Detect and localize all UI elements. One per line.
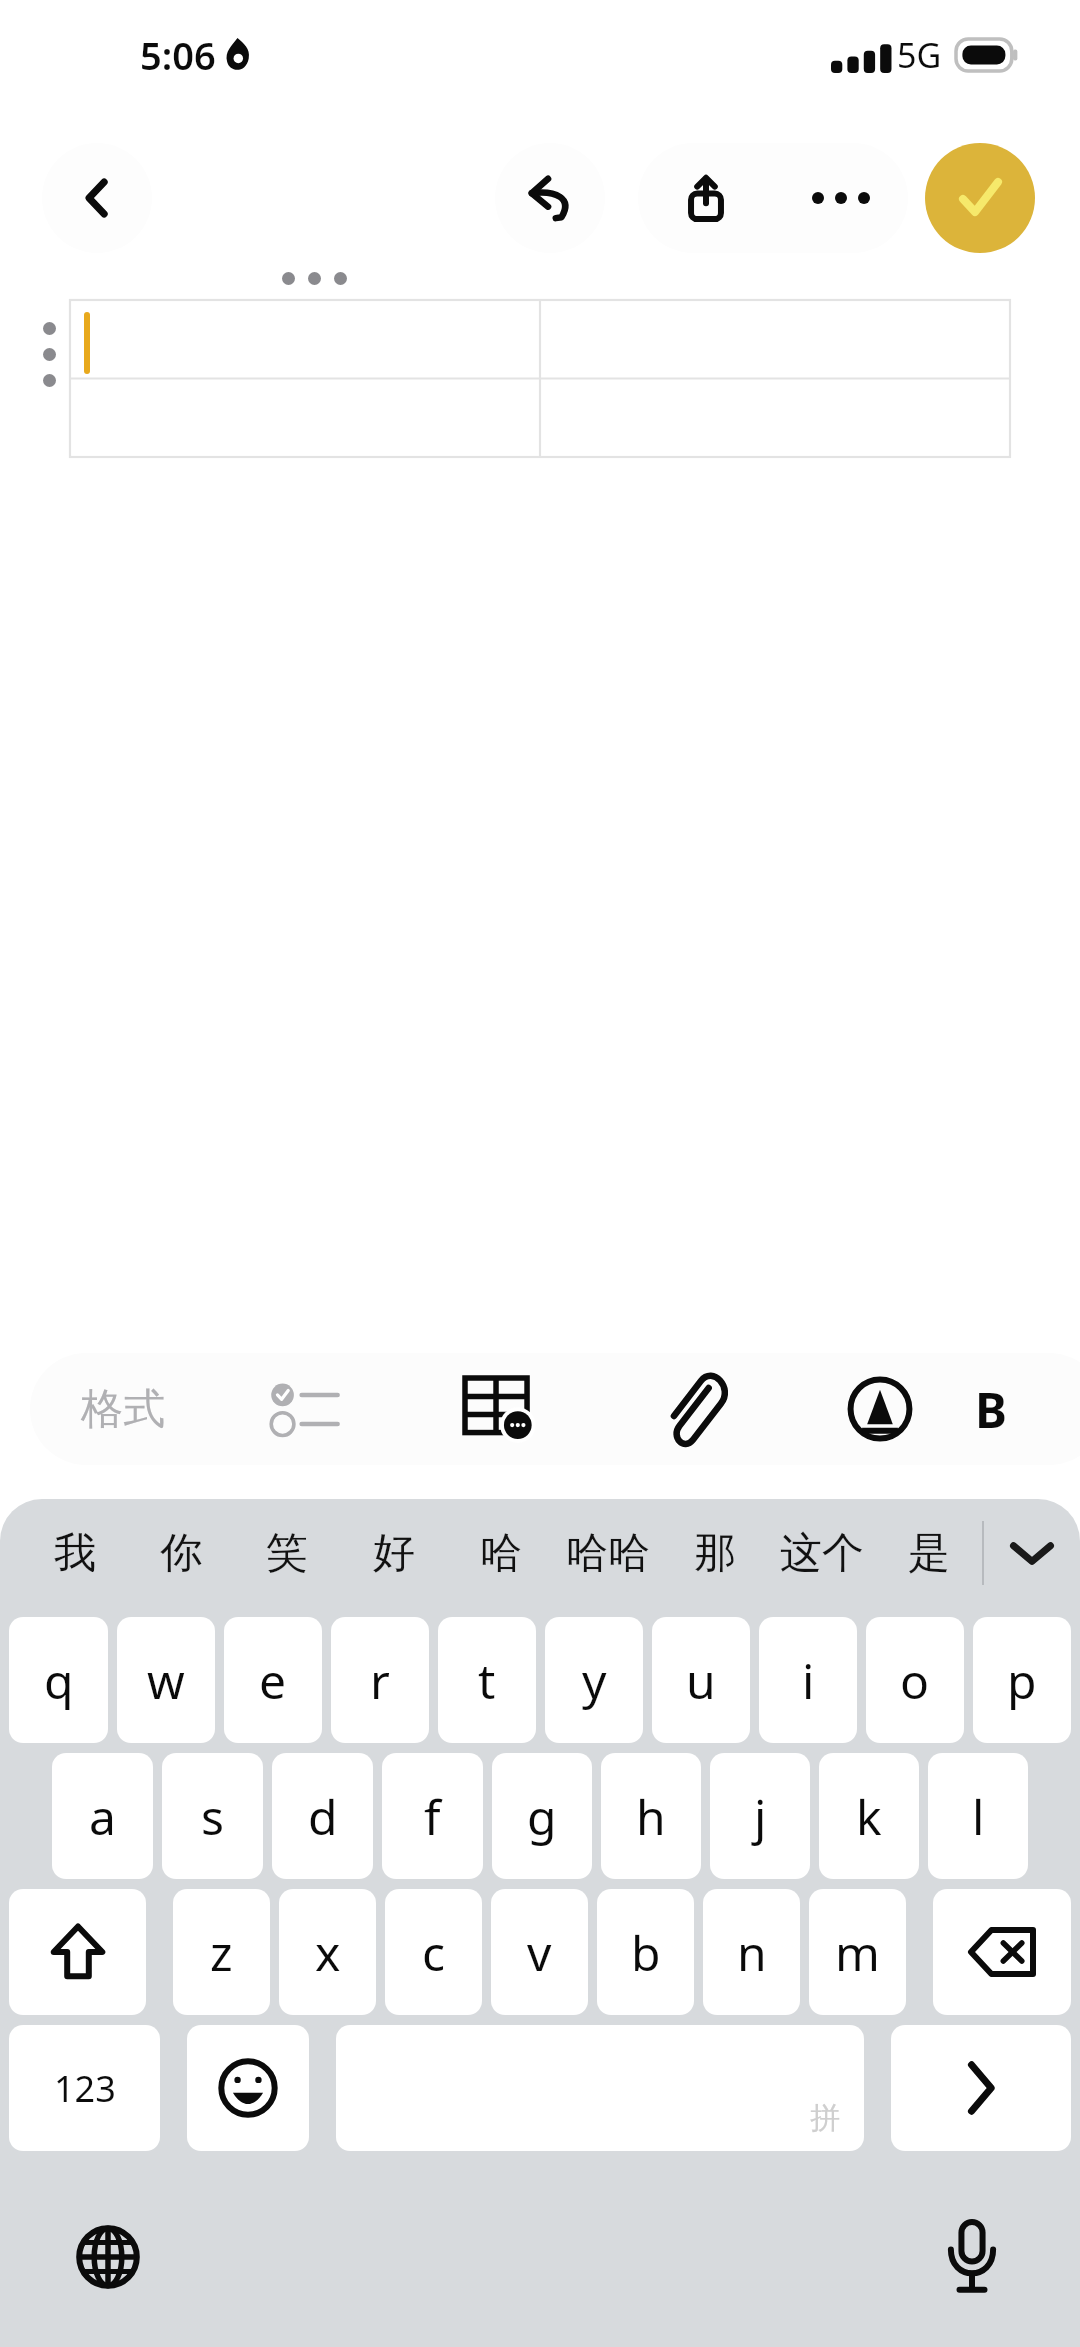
button[interactable]: Table [395, 1353, 600, 1465]
button[interactable]: b [597, 1889, 694, 2015]
button[interactable]: Next [891, 2025, 1071, 2151]
button[interactable]: 笑 [234, 1499, 340, 1607]
button[interactable]: i [759, 1617, 857, 1743]
button[interactable]: f [382, 1753, 483, 1879]
staticText: 哈哈 [566, 1527, 650, 1580]
staticText: a [89, 1784, 116, 1849]
staticText: q [44, 1648, 74, 1713]
staticText: x [315, 1920, 341, 1985]
button[interactable]: 这个 [768, 1499, 875, 1607]
staticText: 你 [160, 1527, 202, 1580]
staticText: u [686, 1648, 716, 1713]
staticText: b [631, 1920, 661, 1985]
button[interactable]: Change keyboard [62, 2211, 154, 2303]
staticText: p [1007, 1648, 1037, 1713]
button[interactable]: Checklist [215, 1353, 395, 1465]
button[interactable] [70, 300, 1010, 457]
button[interactable]: 格式 [30, 1353, 215, 1465]
button[interactable]: p [973, 1617, 1071, 1743]
staticText: 是 [908, 1527, 950, 1580]
button[interactable]: u [652, 1617, 750, 1743]
button[interactable]: v [491, 1889, 588, 2015]
button[interactable]: 你 [128, 1499, 234, 1607]
button[interactable]: c [385, 1889, 482, 2015]
button[interactable]: Row handle [43, 322, 56, 387]
button[interactable]: g [492, 1753, 592, 1879]
staticText: 这个 [780, 1527, 864, 1580]
staticText: h [636, 1784, 666, 1849]
staticText: v [527, 1920, 552, 1985]
button[interactable]: Space [336, 2025, 864, 2151]
button[interactable]: Text style [975, 1353, 1080, 1465]
staticText: 哈 [480, 1527, 522, 1580]
staticText: 好 [373, 1527, 415, 1580]
button[interactable]: w [117, 1617, 215, 1743]
staticText: j [754, 1784, 767, 1849]
button[interactable]: o [866, 1617, 964, 1743]
staticText: y [582, 1648, 607, 1713]
staticText: z [210, 1920, 233, 1985]
staticText: r [370, 1648, 390, 1713]
button[interactable]: 我 [22, 1499, 128, 1607]
staticText: s [201, 1784, 224, 1849]
staticText: w [147, 1648, 185, 1713]
button[interactable]: Emoji [187, 2025, 309, 2151]
button[interactable]: x [279, 1889, 376, 2015]
button[interactable]: Markup [785, 1353, 975, 1465]
staticText: B [975, 1377, 1007, 1442]
staticText: 那 [694, 1527, 736, 1580]
button[interactable]: n [703, 1889, 800, 2015]
button[interactable]: 哈哈 [554, 1499, 661, 1607]
button[interactable]: 哈 [447, 1499, 554, 1607]
button[interactable]: l [928, 1753, 1028, 1879]
button[interactable]: Done [925, 143, 1035, 253]
button[interactable]: Column handle [282, 272, 347, 285]
staticText: o [900, 1648, 930, 1713]
staticText: k [856, 1784, 882, 1849]
staticText: l [972, 1784, 985, 1849]
button[interactable]: Attach [600, 1353, 785, 1465]
staticText: i [802, 1648, 815, 1713]
staticText: c [422, 1920, 446, 1985]
staticText: t [478, 1648, 496, 1713]
button[interactable]: z [173, 1889, 270, 2015]
staticText: m [835, 1920, 880, 1985]
button[interactable]: 是 [875, 1499, 982, 1607]
staticText: n [737, 1920, 767, 1985]
button[interactable]: Backspace [933, 1889, 1071, 2015]
button[interactable]: 那 [661, 1499, 768, 1607]
button[interactable]: q [9, 1617, 108, 1743]
button[interactable]: Undo [495, 143, 605, 253]
button[interactable]: Dictate [926, 2211, 1018, 2303]
button[interactable]: Back [42, 143, 152, 253]
staticText: f [424, 1784, 441, 1849]
staticText: g [527, 1784, 557, 1849]
staticText: d [308, 1784, 338, 1849]
button[interactable]: h [601, 1753, 701, 1879]
staticText: e [259, 1648, 287, 1713]
button[interactable]: Shift [9, 1889, 146, 2015]
staticText: 拼 [810, 2099, 840, 2137]
button[interactable]: a [52, 1753, 153, 1879]
staticText: 5G [897, 32, 942, 78]
button[interactable]: More options [773, 143, 908, 253]
staticText: 123 [54, 2064, 116, 2113]
button[interactable]: Hide suggestions [984, 1499, 1080, 1607]
button[interactable]: Share [638, 143, 773, 253]
button[interactable]: y [545, 1617, 643, 1743]
button[interactable]: t [438, 1617, 536, 1743]
button[interactable]: Numbers [9, 2025, 160, 2151]
button[interactable]: 好 [340, 1499, 447, 1607]
staticText: 我 [54, 1527, 96, 1580]
button[interactable]: e [224, 1617, 322, 1743]
button[interactable]: m [809, 1889, 906, 2015]
button[interactable]: d [272, 1753, 373, 1879]
button[interactable]: k [819, 1753, 919, 1879]
button[interactable]: r [331, 1617, 429, 1743]
staticText: 笑 [266, 1527, 308, 1580]
staticText: 格式 [81, 1383, 165, 1436]
button[interactable]: j [710, 1753, 810, 1879]
staticText: 5:06 [140, 29, 216, 81]
button[interactable]: s [162, 1753, 263, 1879]
